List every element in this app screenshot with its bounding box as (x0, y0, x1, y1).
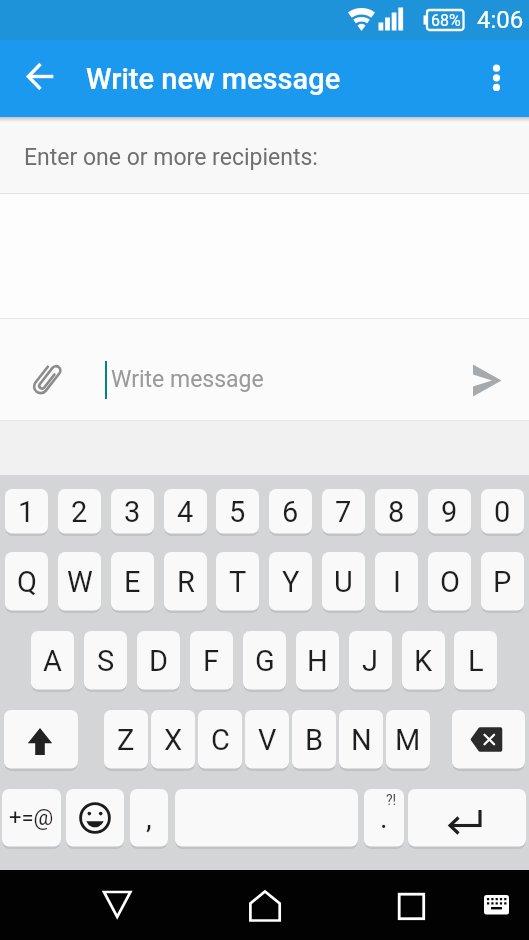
button[interactable] (459, 352, 516, 409)
button[interactable]: T (216, 552, 259, 613)
staticText: R (177, 565, 195, 599)
button[interactable]: O (428, 552, 471, 613)
staticText: 8 (388, 495, 405, 529)
staticText: W (67, 565, 93, 599)
button[interactable]: 6 (269, 489, 312, 536)
staticText: I (393, 565, 401, 599)
button[interactable] (16, 352, 73, 409)
button[interactable] (237, 877, 293, 933)
button[interactable]: C (198, 710, 242, 771)
button[interactable]: , (130, 789, 168, 849)
button[interactable]: A (31, 631, 74, 692)
button[interactable]: S (84, 631, 127, 692)
button[interactable]: 5 (216, 489, 259, 536)
button[interactable]: Enter one or more recipients: (0, 117, 529, 194)
button[interactable]: 7 (322, 489, 365, 536)
staticText: P (493, 565, 512, 599)
button[interactable]: Q (5, 552, 48, 613)
button[interactable]: K (402, 631, 445, 692)
staticText: K (414, 644, 433, 678)
staticText: 1 (18, 495, 35, 529)
button[interactable]: D (137, 631, 180, 692)
staticText: V (258, 723, 277, 757)
button[interactable]: J (349, 631, 392, 692)
staticText: E (124, 565, 141, 599)
button[interactable]: 8 (375, 489, 418, 536)
staticText: 7 (335, 495, 352, 529)
staticText: 5 (229, 495, 246, 529)
staticText: A (43, 644, 62, 678)
button[interactable]: 1 (5, 489, 48, 536)
button[interactable] (478, 881, 522, 925)
button[interactable] (66, 789, 124, 849)
staticText: 2 (71, 495, 88, 529)
button[interactable]: U (322, 552, 365, 613)
button[interactable]: H (296, 631, 339, 692)
staticText: G (255, 644, 275, 678)
staticText: . (380, 801, 388, 835)
staticText: 0 (494, 495, 511, 529)
button[interactable]: L (454, 631, 497, 692)
staticText: Write message (111, 366, 264, 393)
staticText: C (211, 723, 230, 757)
button[interactable] (383, 877, 439, 933)
staticText: 9 (441, 495, 458, 529)
button[interactable]: 0 (481, 489, 524, 536)
button[interactable]: F (190, 631, 233, 692)
staticText: U (334, 565, 353, 599)
button[interactable]: Y (269, 552, 312, 613)
button[interactable]: 3 (111, 489, 154, 536)
button[interactable]: 2 (58, 489, 101, 536)
button[interactable]: . (364, 789, 404, 849)
staticText: 68% (431, 11, 461, 30)
staticText: F (203, 644, 220, 678)
staticText: Y (282, 565, 300, 599)
staticText: T (229, 565, 247, 599)
button[interactable] (175, 789, 358, 849)
button[interactable]: I (375, 552, 418, 613)
staticText: M (395, 723, 421, 757)
staticText: Enter one or more recipients: (24, 144, 318, 171)
button[interactable] (408, 789, 526, 849)
button[interactable]: 9 (428, 489, 471, 536)
staticText: Q (17, 565, 37, 599)
staticText: 6 (282, 495, 299, 529)
staticText: X (164, 723, 183, 757)
button[interactable]: R (164, 552, 207, 613)
button[interactable] (469, 40, 525, 117)
button[interactable]: Z (104, 710, 148, 771)
staticText: S (97, 644, 115, 678)
staticText: ?! (386, 792, 397, 808)
button[interactable]: P (481, 552, 524, 613)
staticText: N (351, 723, 372, 757)
button[interactable]: V (245, 710, 289, 771)
button[interactable]: X (151, 710, 195, 771)
staticText: B (305, 723, 324, 757)
button[interactable]: M (386, 710, 430, 771)
staticText: Z (117, 723, 135, 757)
staticText: 3 (124, 495, 141, 529)
button[interactable]: B (292, 710, 336, 771)
button[interactable]: 4 (164, 489, 207, 536)
button[interactable] (4, 710, 78, 771)
button[interactable] (89, 877, 145, 933)
button[interactable]: E (111, 552, 154, 613)
button[interactable]: +=@ (2, 789, 61, 849)
button[interactable]: G (243, 631, 286, 692)
staticText: 4:06 (477, 6, 524, 34)
staticText: +=@ (9, 805, 54, 831)
staticText: Write new message (86, 62, 341, 96)
staticText: , (146, 801, 152, 835)
staticText: J (362, 644, 379, 678)
staticText: D (149, 644, 169, 678)
button[interactable]: W (58, 552, 101, 613)
button[interactable]: N (339, 710, 383, 771)
button[interactable] (13, 40, 69, 117)
staticText: O (440, 565, 460, 599)
staticText: H (307, 644, 328, 678)
staticText: 4 (177, 495, 194, 529)
staticText: L (468, 644, 484, 678)
button[interactable] (452, 710, 525, 771)
